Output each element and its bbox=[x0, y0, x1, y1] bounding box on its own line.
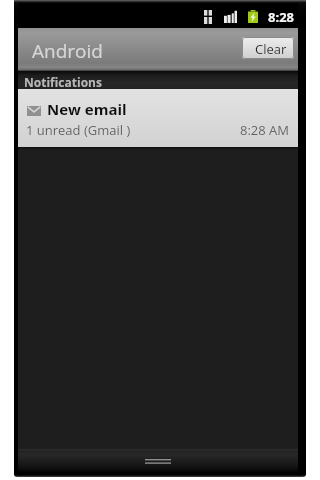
other: Email bbox=[27, 106, 41, 116]
staticText: Clear bbox=[255, 40, 287, 58]
button[interactable]: Clear bbox=[242, 37, 294, 59]
staticText: Android bbox=[32, 38, 103, 64]
other: Battery charging bbox=[248, 10, 258, 23]
staticText: Notifications bbox=[24, 74, 102, 90]
staticText: 8:28 bbox=[268, 8, 295, 26]
staticText: New email bbox=[47, 99, 127, 119]
staticText: 8:28 AM bbox=[240, 121, 290, 139]
other: Mobile data bbox=[204, 10, 212, 24]
button[interactable]: Close notification shade bbox=[18, 449, 298, 472]
staticText: 1 unread (Gmail ) bbox=[26, 121, 131, 139]
button[interactable]: Email bbox=[18, 89, 298, 147]
